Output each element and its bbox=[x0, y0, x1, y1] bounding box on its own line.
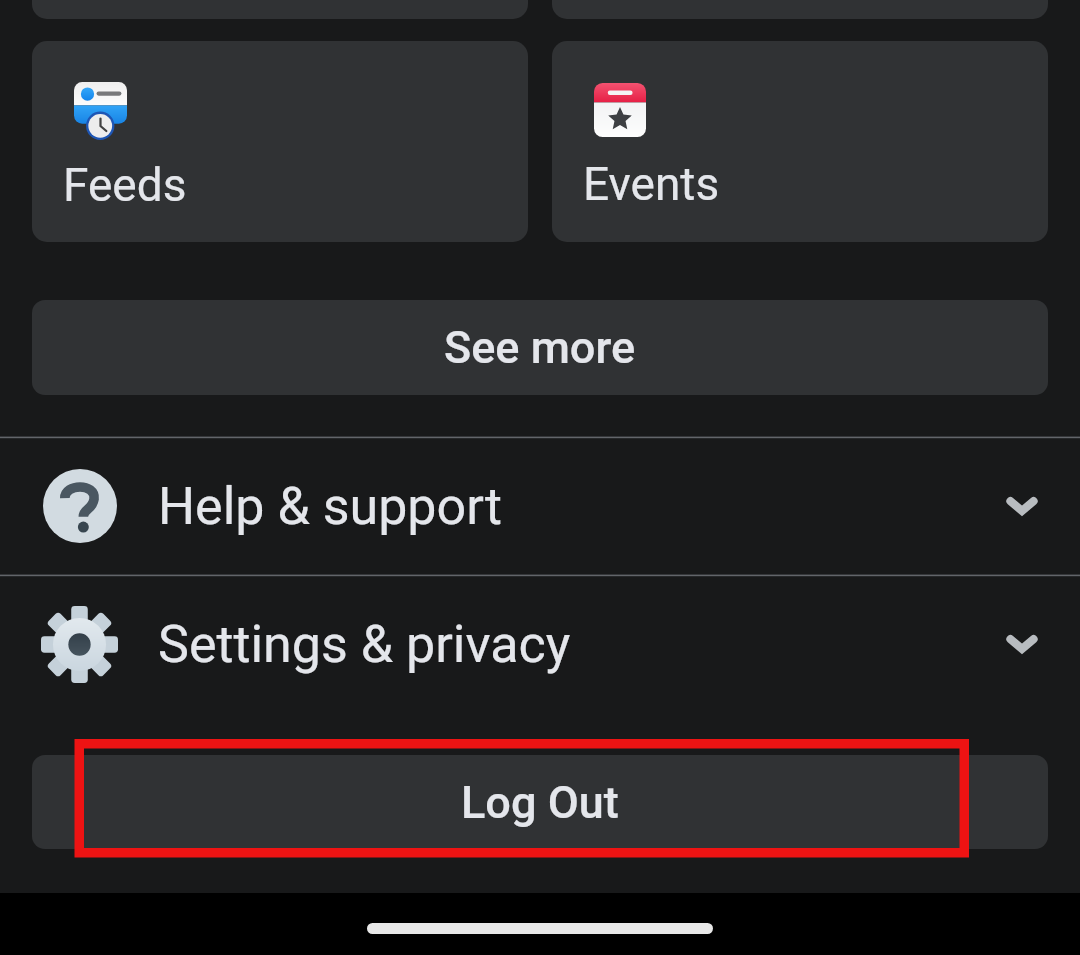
button[interactable]: See more bbox=[32, 300, 1048, 395]
staticText: Settings & privacy bbox=[158, 614, 571, 675]
button[interactable]: Feeds bbox=[32, 41, 528, 242]
other: Expand bbox=[998, 620, 1046, 668]
other: Expand bbox=[998, 482, 1046, 530]
button[interactable]: Settings & privacy bbox=[0, 576, 1080, 712]
staticText: See more bbox=[444, 321, 636, 374]
staticText: Feeds bbox=[63, 158, 187, 212]
button[interactable]: Help & support bbox=[0, 438, 1080, 574]
staticText: Events bbox=[583, 157, 720, 211]
button[interactable]: Events bbox=[552, 41, 1048, 242]
staticText: Help & support bbox=[158, 476, 503, 537]
button[interactable]: Log Out bbox=[32, 755, 1048, 849]
staticText: Log Out bbox=[461, 776, 619, 829]
